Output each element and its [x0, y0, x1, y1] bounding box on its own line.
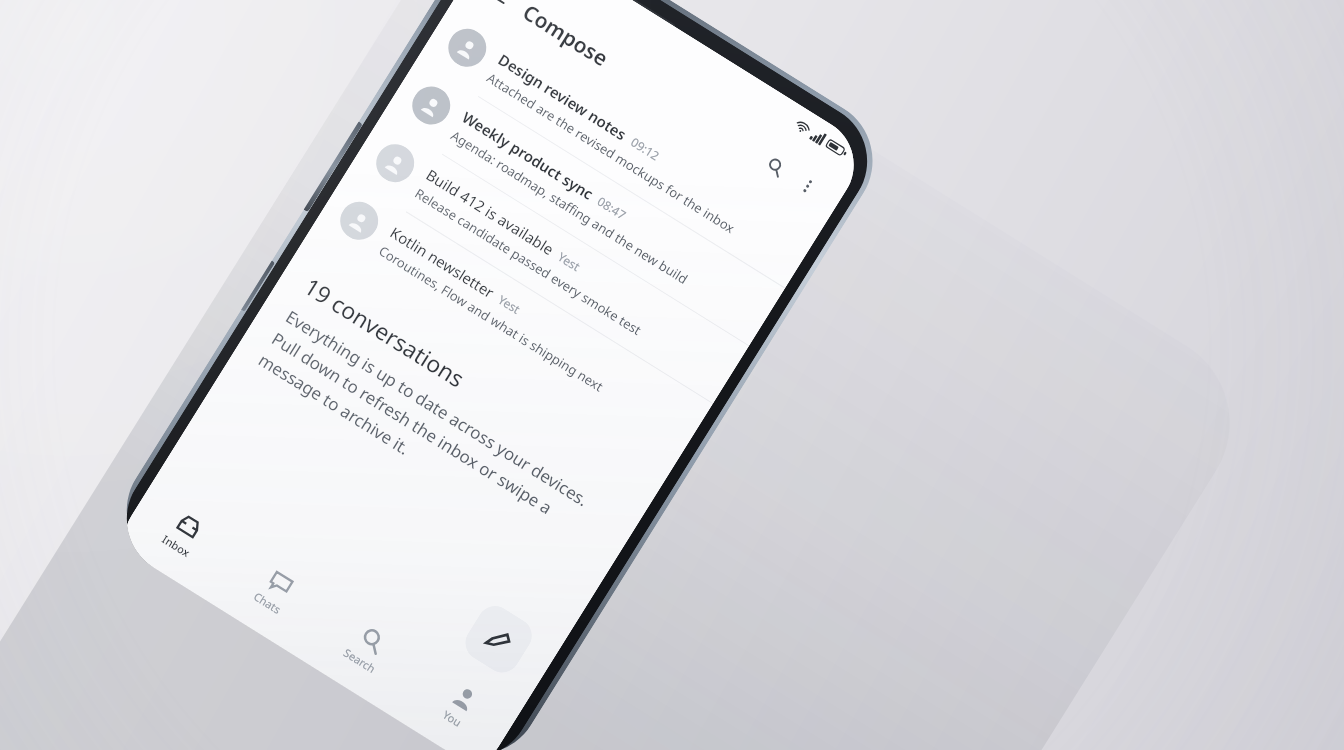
- staticText: Build 412 is available: [423, 164, 558, 259]
- staticText: 09:12: [628, 133, 663, 163]
- button[interactable]: Open navigation menu: [475, 0, 522, 17]
- staticText: Attached are the revised mockups for the…: [484, 69, 738, 237]
- staticText: Search: [341, 645, 379, 676]
- staticText: 08:47: [595, 193, 629, 223]
- button[interactable]: Design review notes: [417, 1, 821, 288]
- staticText: Release candidate passed every smoke tes…: [411, 184, 645, 339]
- button[interactable]: Build 412 is available: [345, 116, 749, 403]
- button[interactable]: Search: [301, 587, 434, 709]
- button[interactable]: Chats: [209, 530, 341, 651]
- button[interactable]: Kotlin newsletter: [309, 174, 713, 461]
- staticText: Everything is up to date across your dev…: [254, 305, 618, 570]
- button[interactable]: Weekly product sync: [381, 59, 785, 345]
- staticText: Design review notes: [495, 49, 631, 145]
- button[interactable]: You: [394, 645, 526, 750]
- staticText: Chats: [251, 589, 284, 617]
- button[interactable]: Search: [752, 143, 799, 189]
- staticText: Coroutines, Flow and what is shipping ne…: [375, 242, 607, 396]
- staticText: Yest: [495, 291, 524, 317]
- staticText: Yest: [555, 248, 584, 275]
- staticText: Agenda: roadmap, staffing and the new bu…: [448, 126, 691, 288]
- staticText: Weekly product sync: [459, 107, 597, 204]
- button[interactable]: More options: [784, 163, 831, 210]
- staticText: 19 conversations: [299, 270, 471, 393]
- staticText: Kotlin newsletter: [387, 222, 498, 302]
- staticText: Compose: [517, 0, 614, 73]
- staticText: Inbox: [159, 531, 194, 560]
- button[interactable]: Compose message: [459, 599, 538, 679]
- button[interactable]: Inbox: [118, 473, 250, 594]
- staticText: You: [440, 707, 465, 730]
